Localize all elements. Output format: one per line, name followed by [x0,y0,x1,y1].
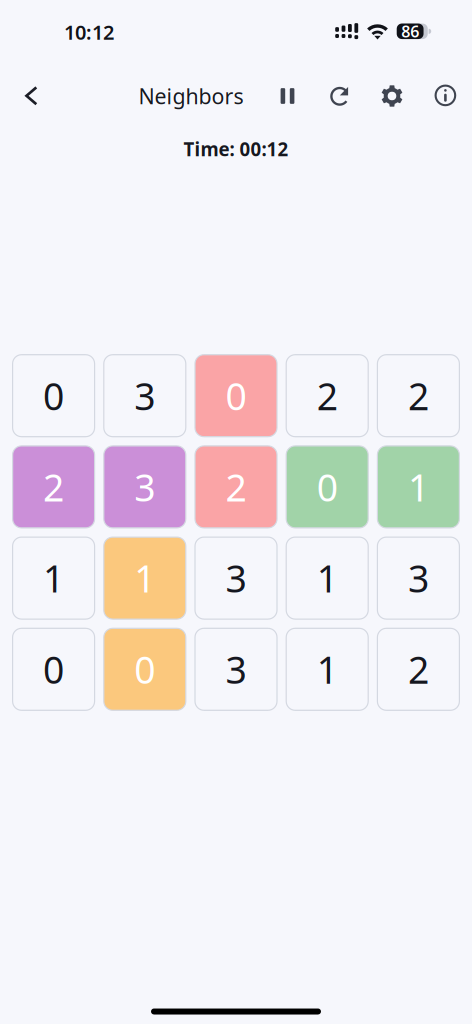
staticText: 3 [225,553,246,603]
button[interactable]: 1 [286,537,368,619]
button[interactable]: 0 [195,355,277,437]
staticText: 86 [401,21,419,42]
staticText: 2 [408,644,429,694]
button[interactable]: Back [9,74,53,118]
staticText: 1 [134,553,155,603]
staticText: 1 [408,462,429,512]
button[interactable]: 2 [377,355,459,437]
button[interactable]: 2 [13,446,95,528]
staticText: 1 [43,553,64,603]
staticText: 2 [317,371,338,420]
button[interactable]: Settings [372,74,412,118]
button[interactable]: 1 [104,537,186,619]
staticText: 2 [225,462,246,512]
staticText: 3 [408,553,429,603]
button[interactable]: 3 [195,537,277,619]
staticText: 1 [317,644,338,694]
staticText: 1 [317,553,338,603]
button[interactable]: 3 [195,628,277,710]
staticText: 0 [225,371,246,420]
staticText: 3 [134,371,155,420]
button[interactable]: 0 [13,628,95,710]
staticText: 0 [317,462,338,512]
button[interactable]: Pause [267,74,307,118]
button[interactable]: 2 [377,628,459,710]
button[interactable]: 1 [286,628,368,710]
staticText: Time: 00:12 [183,137,288,161]
button[interactable]: 2 [195,446,277,528]
button[interactable]: 3 [104,355,186,437]
staticText: 2 [408,371,429,420]
button[interactable]: Info [425,73,465,117]
button[interactable]: Restart [321,75,361,119]
button[interactable]: 1 [13,537,95,619]
button[interactable]: 0 [104,628,186,710]
staticText: 3 [225,644,246,694]
button[interactable]: 0 [13,355,95,437]
button[interactable]: 3 [377,537,459,619]
staticText: 2 [43,462,64,512]
staticText: 3 [134,462,155,512]
button[interactable]: 0 [286,446,368,528]
button[interactable]: 2 [286,355,368,437]
button[interactable]: 1 [377,446,459,528]
staticText: Neighbors [138,82,243,110]
staticText: 10:12 [64,19,114,45]
button[interactable]: 3 [104,446,186,528]
staticText: 0 [43,644,64,694]
staticText: 0 [134,644,155,694]
staticText: 0 [43,371,64,420]
